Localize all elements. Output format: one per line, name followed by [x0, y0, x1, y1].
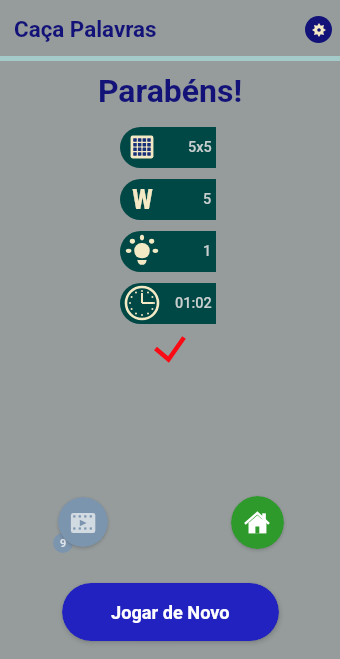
staticText: Jogar de Novo [111, 602, 230, 623]
button[interactable]: 5 [120, 179, 216, 220]
button[interactable]: Jogar de Novo [62, 583, 279, 641]
button[interactable]: Home [231, 496, 284, 549]
staticText: W [132, 183, 153, 216]
button[interactable]: Settings [305, 16, 332, 43]
staticText: Caça Palavras [14, 16, 157, 42]
staticText: 1 [203, 243, 212, 260]
staticText: 5x5 [188, 139, 212, 156]
button[interactable]: 01:02 [120, 283, 216, 324]
staticText: 9 [60, 537, 67, 550]
staticText: 5 [203, 191, 212, 208]
staticText: Parabéns! [0, 72, 340, 110]
staticText: 01:02 [175, 295, 212, 312]
button[interactable]: Watch video for hints [58, 497, 108, 547]
button[interactable]: 5x5 [120, 127, 216, 168]
button[interactable]: 1 [120, 231, 216, 272]
